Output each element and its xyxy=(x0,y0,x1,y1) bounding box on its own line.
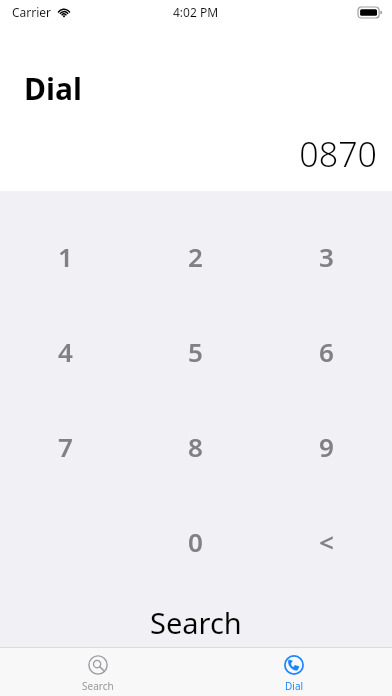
staticText: 1 xyxy=(58,239,73,274)
staticText: 4:02 PM xyxy=(173,4,219,20)
staticText: 2 xyxy=(188,239,203,274)
staticText: Search xyxy=(82,679,114,693)
staticText: 9 xyxy=(319,429,334,464)
staticText: 7 xyxy=(58,429,73,464)
button[interactable]: 8 xyxy=(130,426,261,466)
button[interactable]: 6 xyxy=(261,331,392,371)
button[interactable]: < xyxy=(261,521,392,561)
button[interactable]: 9 xyxy=(261,426,392,466)
button[interactable]: 0 xyxy=(130,521,261,561)
button[interactable]: 1 xyxy=(0,236,130,276)
staticText: 6 xyxy=(319,334,334,369)
staticText: Dial xyxy=(24,68,82,109)
button[interactable]: 3 xyxy=(261,236,392,276)
other: Dial xyxy=(284,655,304,675)
staticText: Search xyxy=(150,603,242,642)
button[interactable]: Dial xyxy=(196,648,392,696)
staticText: 4 xyxy=(58,334,73,369)
staticText: 0870 xyxy=(0,131,377,177)
staticText: 0 xyxy=(188,524,203,559)
button[interactable]: 5 xyxy=(130,331,261,371)
button[interactable]: 4 xyxy=(0,331,130,371)
button[interactable]: 7 xyxy=(0,426,130,466)
button[interactable]: Search xyxy=(0,648,196,696)
button[interactable]: 2 xyxy=(130,236,261,276)
staticText: < xyxy=(319,524,334,559)
other: Search xyxy=(88,655,108,675)
button[interactable]: Search xyxy=(0,600,392,644)
staticText: 8 xyxy=(188,429,203,464)
staticText: 5 xyxy=(188,334,203,369)
staticText: Carrier xyxy=(12,4,52,20)
staticText: 3 xyxy=(319,239,334,274)
staticText: Dial xyxy=(285,679,304,693)
